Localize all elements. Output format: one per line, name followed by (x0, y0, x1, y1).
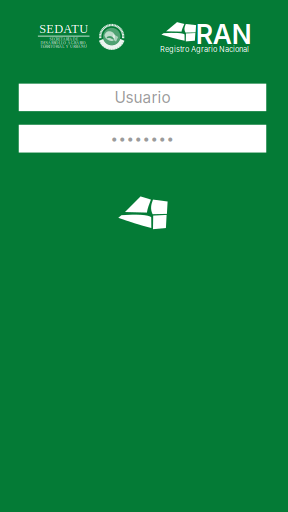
staticText: Usuario (114, 88, 170, 107)
button[interactable]: Usuario (19, 84, 266, 111)
staticText: RAN (196, 18, 252, 51)
staticText: SEDATU (39, 22, 88, 36)
staticText: TERRITORIAL Y URBANO (40, 44, 87, 49)
button[interactable]: •••••••• (19, 125, 266, 153)
staticText: DESARROLLO AGRARIO, (40, 41, 87, 45)
staticText: Registro Agrario Nacional (160, 45, 249, 54)
staticText: SECRETARÍA DE (49, 37, 78, 41)
staticText: •••••••• (110, 131, 174, 147)
